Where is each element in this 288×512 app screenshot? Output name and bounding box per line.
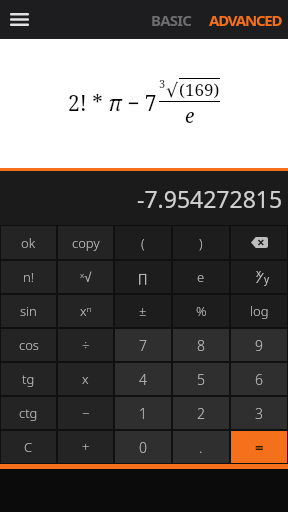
button[interactable]: x xyxy=(58,363,113,395)
staticText: 3 xyxy=(255,404,263,423)
staticText: ctg xyxy=(19,404,38,422)
button[interactable]: 3 xyxy=(231,397,287,429)
staticText: -7.954272815 xyxy=(137,183,283,214)
button[interactable]: = xyxy=(231,431,287,463)
staticText: % xyxy=(196,302,207,320)
button[interactable]: 1 xyxy=(115,397,171,429)
staticText: copy xyxy=(72,234,100,252)
button[interactable]: 2 xyxy=(173,397,229,429)
button[interactable]: x xyxy=(231,261,287,293)
staticText: . xyxy=(199,438,203,457)
button[interactable]: log xyxy=(231,295,287,327)
button[interactable] xyxy=(0,0,39,39)
button[interactable]: 9 xyxy=(231,329,287,361)
staticText: 1 xyxy=(139,404,147,423)
button[interactable]: e xyxy=(173,261,229,293)
button[interactable]: % xyxy=(173,295,229,327)
button[interactable]: cos xyxy=(1,329,56,361)
staticText: BASIC xyxy=(151,10,192,30)
button[interactable]: xⁿ xyxy=(58,295,113,327)
button[interactable]: copy xyxy=(58,226,113,259)
button[interactable]: 5 xyxy=(173,363,229,395)
button[interactable]: tg xyxy=(1,363,56,395)
staticText: − xyxy=(82,404,90,422)
staticText: 4 xyxy=(139,370,147,389)
staticText: 7 xyxy=(139,336,147,355)
staticText: tg xyxy=(22,370,35,388)
staticText: = xyxy=(255,437,264,457)
staticText: C xyxy=(24,438,33,456)
button[interactable]: C xyxy=(1,431,56,463)
button[interactable]: sin xyxy=(1,295,56,327)
button[interactable]: ok xyxy=(1,226,56,259)
staticText: e xyxy=(185,103,195,129)
staticText: y xyxy=(264,272,270,286)
staticText: 0 xyxy=(139,438,147,457)
button[interactable]: ˣ√ xyxy=(58,261,113,293)
button[interactable]: ADVANCED xyxy=(209,0,282,39)
staticText: log xyxy=(250,302,269,320)
button[interactable]: 7 xyxy=(115,329,171,361)
staticText: (169) xyxy=(179,78,220,101)
staticText: ± xyxy=(139,302,147,320)
staticText: + xyxy=(82,438,90,456)
button[interactable]: + xyxy=(58,431,113,463)
staticText: √ xyxy=(166,79,179,101)
button[interactable]: 4 xyxy=(115,363,171,395)
staticText: ⁄ xyxy=(259,267,261,287)
button[interactable]: − xyxy=(58,397,113,429)
staticText: sin xyxy=(20,302,37,320)
button[interactable]: . xyxy=(173,431,229,463)
button[interactable]: BASIC xyxy=(151,0,192,39)
staticText: 2! * π − 7 xyxy=(68,89,157,118)
staticText: xⁿ xyxy=(80,302,92,320)
button[interactable]: ± xyxy=(115,295,171,327)
staticText: cos xyxy=(19,336,39,354)
staticText: 8 xyxy=(197,336,205,355)
staticText: ( xyxy=(141,234,145,252)
staticText: 6 xyxy=(255,370,263,389)
staticText: ) xyxy=(199,234,203,252)
staticText: 3 xyxy=(159,76,166,91)
button[interactable]: ctg xyxy=(1,397,56,429)
button[interactable]: ( xyxy=(115,226,171,259)
staticText: 9 xyxy=(255,336,263,355)
button[interactable] xyxy=(231,226,287,259)
staticText: ADVANCED xyxy=(209,10,282,30)
staticText: ok xyxy=(21,234,36,252)
button[interactable]: 0 xyxy=(115,431,171,463)
staticText: ∏ xyxy=(138,271,148,284)
staticText: ÷ xyxy=(82,336,90,354)
button[interactable]: 8 xyxy=(173,329,229,361)
button[interactable]: 6 xyxy=(231,363,287,395)
staticText: 5 xyxy=(197,370,205,389)
staticText: 2 xyxy=(197,404,205,423)
button[interactable]: ∏ xyxy=(115,261,171,293)
button[interactable]: n! xyxy=(1,261,56,293)
staticText: n! xyxy=(23,268,34,286)
button[interactable]: ÷ xyxy=(58,329,113,361)
staticText: x xyxy=(82,370,89,388)
staticText: ˣ√ xyxy=(80,268,92,286)
staticText: x xyxy=(256,266,262,280)
button[interactable]: ) xyxy=(173,226,229,259)
staticText: e xyxy=(197,268,205,286)
